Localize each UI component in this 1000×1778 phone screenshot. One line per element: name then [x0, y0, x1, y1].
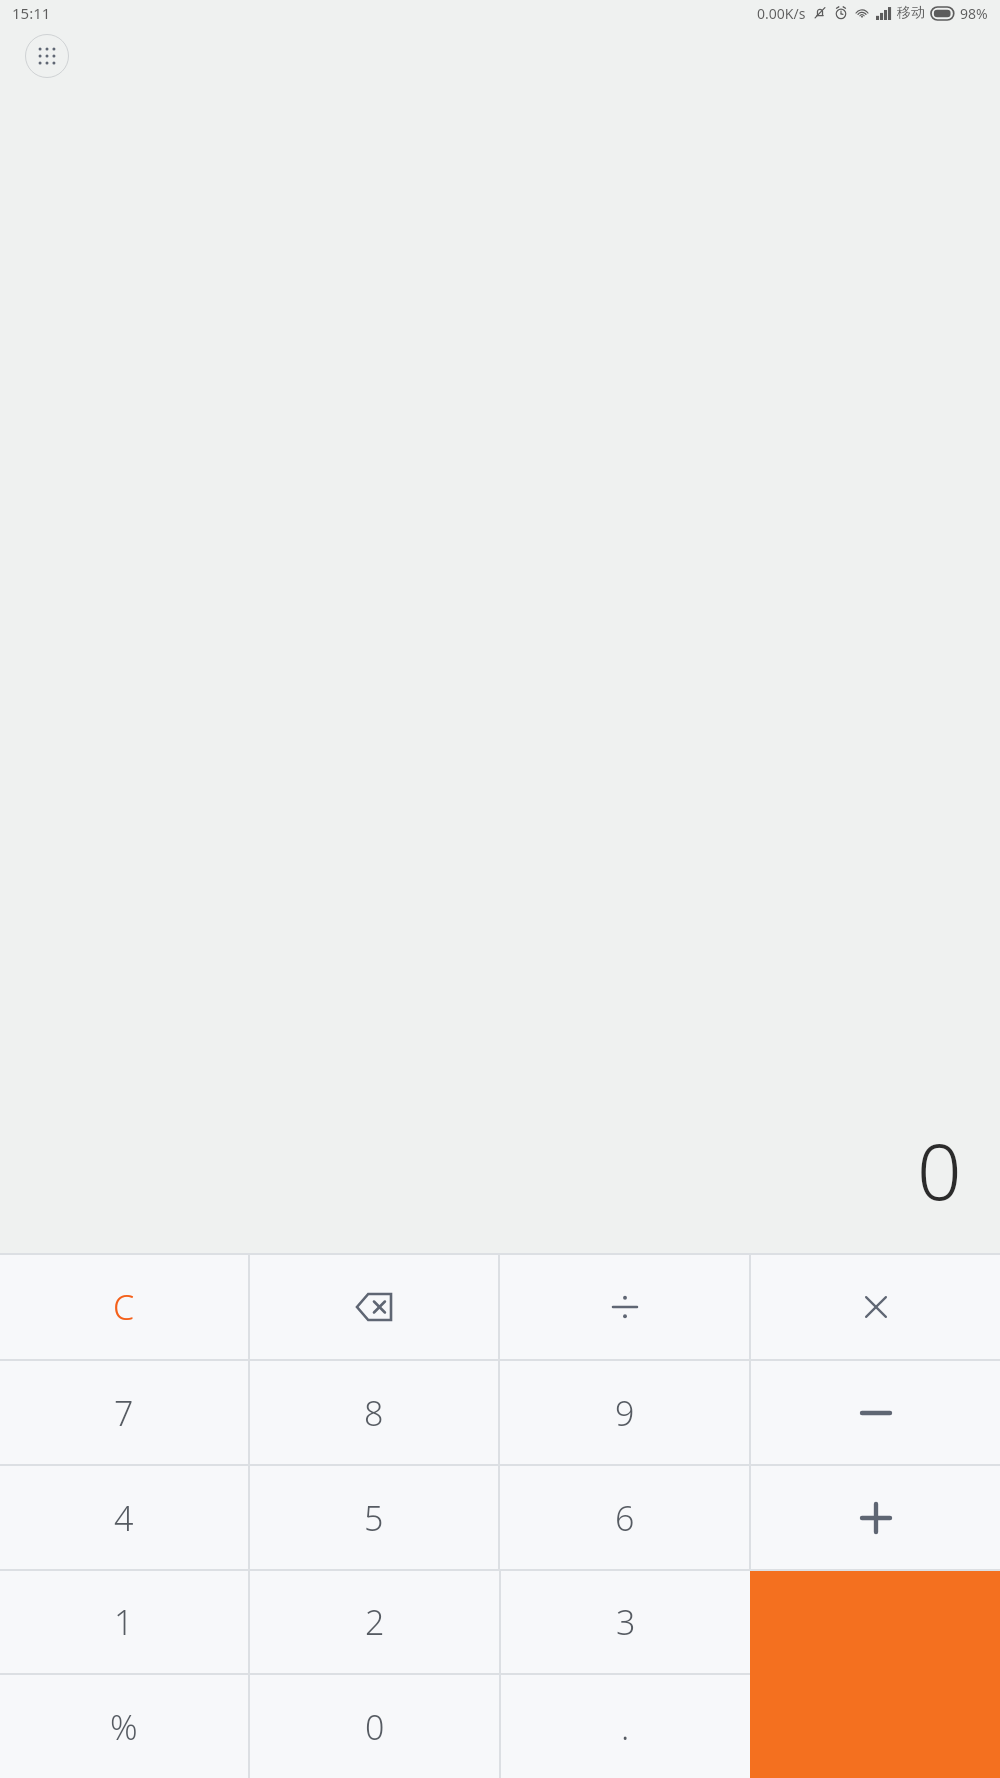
staticText: .: [621, 1704, 630, 1750]
staticText: 7: [114, 1390, 134, 1436]
staticText: 9: [615, 1390, 635, 1436]
staticText: 98%: [960, 4, 988, 23]
button[interactable]: 2: [250, 1571, 499, 1673]
staticText: 15:11: [12, 3, 51, 23]
staticText: 0: [365, 1704, 385, 1750]
staticText: 3: [616, 1599, 636, 1645]
staticText: 8: [364, 1390, 384, 1436]
button[interactable]: 0: [250, 1675, 499, 1778]
button[interactable]: 9: [500, 1361, 749, 1464]
button[interactable]: Plus: [751, 1466, 1000, 1569]
button[interactable]: 8: [250, 1361, 498, 1464]
staticText: 0.00K/s: [757, 4, 806, 23]
staticText: 6: [615, 1495, 635, 1541]
staticText: 移动: [897, 4, 925, 22]
button[interactable]: Divide: [500, 1255, 749, 1359]
button[interactable]: %: [0, 1675, 248, 1778]
staticText: 1: [114, 1599, 134, 1645]
staticText: C: [113, 1284, 135, 1330]
staticText: 2: [365, 1599, 385, 1645]
button[interactable]: C: [0, 1255, 248, 1359]
button[interactable]: 7: [0, 1361, 248, 1464]
staticText: %: [110, 1704, 138, 1750]
button[interactable]: 5: [250, 1466, 498, 1569]
button[interactable]: 4: [0, 1466, 248, 1569]
staticText: 0: [917, 1117, 962, 1223]
button[interactable]: 6: [500, 1466, 749, 1569]
button[interactable]: Multiply: [751, 1255, 1000, 1359]
button[interactable]: 1: [0, 1571, 248, 1673]
button[interactable]: Minus: [751, 1361, 1000, 1464]
staticText: 4: [114, 1495, 134, 1541]
staticText: 5: [364, 1495, 384, 1541]
button[interactable]: 3: [501, 1571, 750, 1673]
button[interactable]: App drawer: [25, 34, 69, 78]
button[interactable]: Backspace: [250, 1255, 498, 1359]
